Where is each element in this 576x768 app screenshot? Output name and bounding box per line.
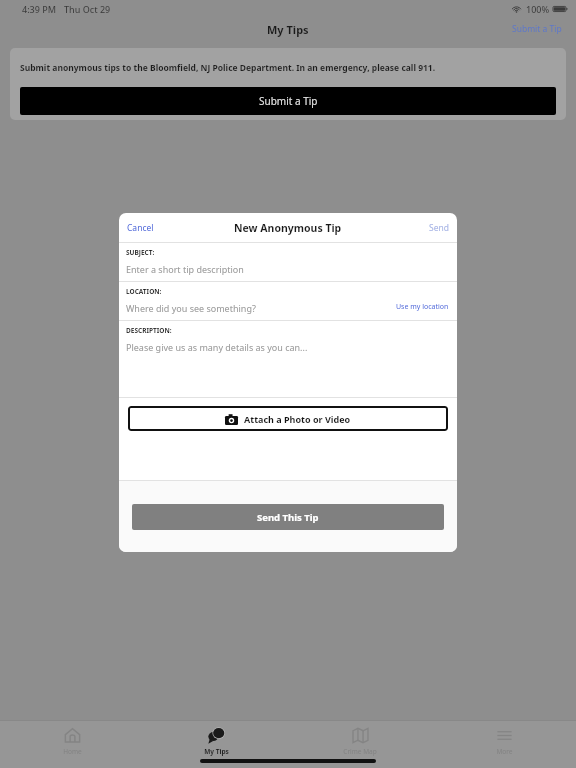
button[interactable]: SUBJECT: [119, 243, 457, 281]
staticText: My Tips [204, 747, 229, 756]
staticText: New Anonymous Tip [234, 221, 342, 235]
staticText: 100% [526, 3, 550, 15]
staticText: Where did you see something? [126, 302, 256, 314]
other: Crime Map [352, 727, 369, 744]
staticText: SUBJECT: [126, 248, 155, 257]
staticText: More [496, 747, 513, 756]
button[interactable]: LOCATION: [119, 282, 457, 320]
button[interactable]: My Tips [144, 721, 288, 756]
staticText: Submit a Tip [259, 94, 318, 108]
other: Home [64, 727, 81, 744]
other: More [496, 727, 513, 744]
staticText: Enter a short tip description [126, 263, 244, 275]
staticText: Cancel [127, 222, 154, 234]
staticText: Attach a Photo or Video [244, 413, 351, 425]
staticText: Thu Oct 29 [64, 3, 111, 15]
button[interactable]: Attach a Photo or Video [128, 406, 448, 431]
staticText: Crime Map [343, 747, 377, 756]
staticText: Use my location [396, 302, 449, 312]
button[interactable]: Send [425, 218, 453, 238]
staticText: Submit anonymous tips to the Bloomfield,… [20, 62, 436, 74]
staticText: 4:39 PM [22, 3, 56, 15]
staticText: Submit a Tip [512, 23, 562, 35]
staticText: Please give us as many details as you ca… [126, 341, 308, 353]
staticText: Home [63, 747, 82, 756]
staticText: LOCATION: [126, 287, 162, 296]
button[interactable]: Use my location [392, 300, 453, 314]
other: My Tips [208, 727, 225, 744]
button[interactable]: Send This Tip [132, 504, 444, 530]
staticText: My Tips [267, 22, 309, 37]
button[interactable]: Submit a Tip [508, 20, 566, 38]
button[interactable]: DESCRIPTION: [119, 321, 457, 397]
staticText: DESCRIPTION: [126, 326, 172, 335]
staticText: Send This Tip [257, 511, 319, 524]
button[interactable]: Cancel [123, 218, 158, 238]
staticText: Send [429, 222, 449, 234]
button[interactable]: Submit a Tip [20, 87, 556, 115]
